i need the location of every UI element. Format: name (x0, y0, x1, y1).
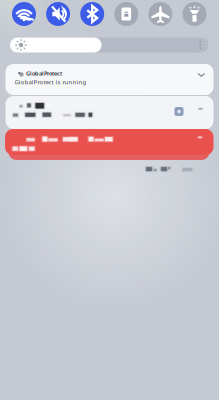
button[interactable]: GlobalProtect, GlobalProtect is running (5, 64, 213, 95)
button[interactable]: Bluetooth (80, 2, 104, 26)
button[interactable]: Mute (46, 2, 70, 26)
button[interactable]: Brightness (10, 37, 208, 52)
button[interactable]: Alert notification (5, 129, 214, 166)
button[interactable]: Wi-Fi (12, 2, 36, 26)
button[interactable]: Flashlight (182, 2, 206, 26)
button[interactable]: Notification (5, 96, 213, 129)
staticText: GlobalProtect (26, 70, 62, 77)
button[interactable]: Auto-rotate (114, 2, 138, 26)
staticText: GlobalProtect is running (14, 78, 86, 86)
button[interactable]: Airplane mode (148, 2, 172, 26)
